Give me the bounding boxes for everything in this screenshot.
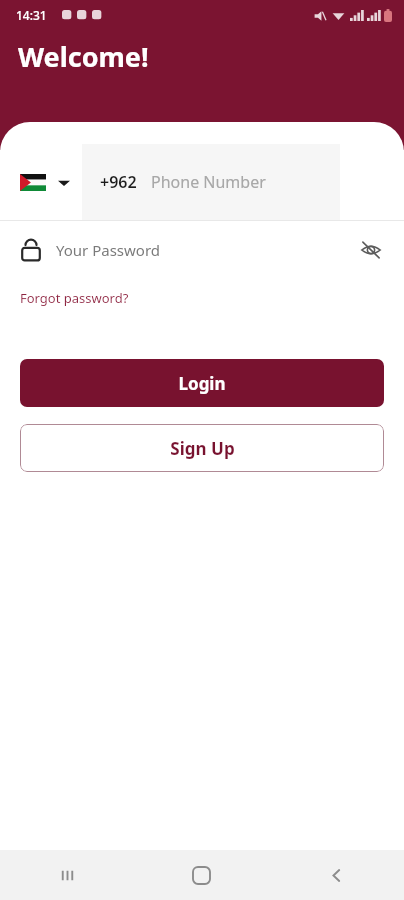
staticText: Sign Up bbox=[170, 437, 235, 460]
button[interactable]: Sign Up bbox=[20, 424, 384, 472]
staticText: Phone Number bbox=[151, 171, 266, 193]
button[interactable]: Select country code bbox=[14, 166, 76, 199]
button[interactable]: +962 bbox=[82, 144, 340, 220]
staticText: Your Password bbox=[56, 240, 354, 260]
button[interactable]: Forgot password? bbox=[14, 285, 135, 311]
staticText: Forgot password? bbox=[20, 289, 129, 307]
staticText: 14:31 bbox=[16, 7, 47, 23]
staticText: Login bbox=[178, 372, 226, 395]
button[interactable]: Toggle password visibility bbox=[354, 233, 388, 267]
button[interactable]: Home bbox=[134, 850, 269, 900]
staticText: +962 bbox=[100, 171, 137, 193]
button[interactable]: Recent apps bbox=[0, 850, 134, 900]
button[interactable]: Back bbox=[269, 850, 404, 900]
button[interactable]: Your Password bbox=[0, 221, 404, 279]
button[interactable]: Login bbox=[20, 359, 384, 407]
staticText: Welcome! bbox=[18, 38, 149, 75]
